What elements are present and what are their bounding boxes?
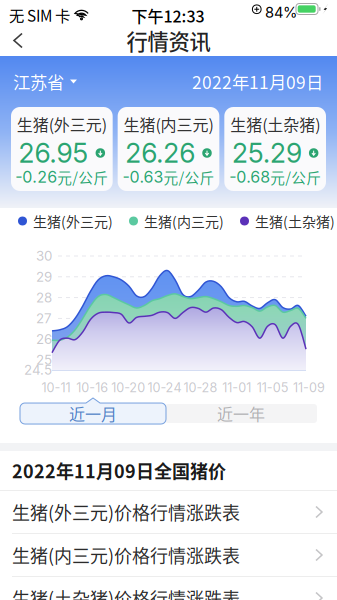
staticText: 26	[36, 331, 52, 347]
staticText: 24.5	[24, 362, 52, 378]
staticText: 元/公斤	[57, 166, 108, 188]
staticText: 10-16	[76, 380, 108, 395]
staticText: -0.26	[15, 167, 57, 187]
staticText: 25.29	[232, 137, 302, 169]
staticText: 生猪(土杂猪)	[255, 211, 335, 231]
staticText: 元/公斤	[163, 166, 214, 188]
staticText: 行情资讯	[126, 25, 210, 56]
staticText: 2022年11月09日全国猪价	[12, 457, 226, 484]
button[interactable]: 近一月	[20, 398, 166, 424]
button[interactable]: 生猪(外三元)价格行情涨跌表	[0, 491, 337, 533]
staticText: 11-01	[222, 380, 251, 395]
staticText: 生猪(内三元)	[123, 112, 213, 136]
staticText: 生猪(土杂猪)	[230, 112, 320, 136]
staticText: 生猪(内三元)价格行情涨跌表	[12, 542, 240, 568]
staticText: 84%	[265, 3, 297, 21]
staticText: 生猪(土杂猪)价格行情涨跌表	[12, 585, 240, 600]
button[interactable]: 生猪(土杂猪)价格行情涨跌表	[0, 577, 337, 600]
staticText: 江苏省	[13, 69, 64, 94]
staticText: 2022年11月09日	[192, 69, 323, 94]
staticText: 10-11	[42, 380, 71, 395]
staticText: 25	[36, 352, 52, 368]
staticText: 元/公斤	[270, 166, 321, 188]
staticText: 26.95	[19, 137, 89, 169]
staticText: 近一月	[69, 402, 117, 425]
staticText: 26.26	[125, 137, 195, 169]
staticText: 生猪(内三元)	[144, 211, 224, 231]
staticText: 27	[36, 310, 52, 326]
button[interactable]: Back	[0, 25, 36, 55]
staticText: 下午12:33	[131, 4, 204, 27]
staticText: -0.63	[122, 167, 163, 187]
staticText: 30	[36, 248, 52, 264]
button[interactable]: 生猪(内三元)价格行情涨跌表	[0, 534, 337, 576]
staticText: 10-24	[147, 380, 181, 395]
button[interactable]: 近一年	[165, 404, 317, 423]
staticText: 10-20	[111, 380, 145, 395]
staticText: 11-05	[257, 380, 289, 395]
button[interactable]: 江苏省	[0, 56, 87, 106]
staticText: 29	[36, 269, 52, 285]
staticText: 28	[36, 289, 52, 306]
staticText: 生猪(外三元)价格行情涨跌表	[12, 499, 240, 525]
staticText: 生猪(外三元)	[17, 112, 107, 136]
staticText: 生猪(外三元)	[33, 211, 113, 231]
staticText: 近一年	[217, 402, 265, 425]
staticText: -0.68	[229, 167, 270, 187]
staticText: 10-28	[184, 380, 218, 395]
staticText: 11-09	[293, 380, 325, 395]
staticText: 无 SIM 卡	[9, 4, 70, 26]
